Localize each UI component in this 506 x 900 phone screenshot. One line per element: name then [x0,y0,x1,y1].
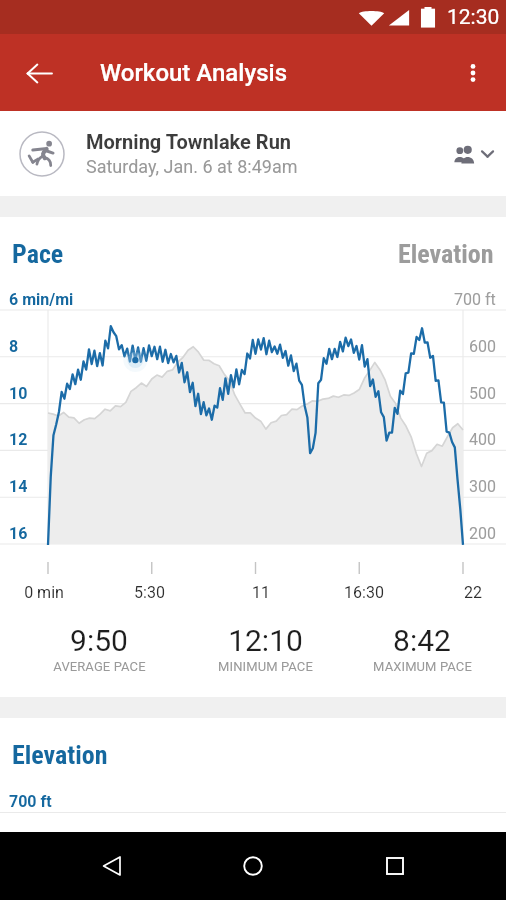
button[interactable]: 8:42 [342,623,502,674]
staticText: 11 [252,583,270,602]
staticText: 8:42 [393,623,451,658]
staticText: 12 [9,430,28,449]
button[interactable]: Home [223,836,283,896]
button[interactable]: Back [82,836,142,896]
staticText: MAXIMUM PACE [373,659,472,674]
staticText: 0 min [24,583,64,602]
staticText: 12:10 [228,623,303,658]
staticText: AVERAGE PACE [53,659,146,674]
staticText: 10 [9,384,28,403]
staticText: 12:30 [447,5,500,30]
staticText: 22 [464,583,482,602]
staticText: 700 ft [9,792,52,811]
staticText: 9:50 [70,623,128,658]
staticText: 200 [469,524,496,543]
staticText: 5:30 [134,583,165,602]
staticText: 600 [469,337,496,356]
staticText: Saturday, Jan. 6 at 8:49am [86,156,298,177]
staticText: 14 [9,477,28,496]
staticText: 500 [469,384,496,403]
button[interactable]: Workout visibility [444,123,506,185]
button[interactable]: Morning Townlake Run [0,111,506,196]
button[interactable]: Navigate up [13,47,65,99]
button[interactable]: Elevation [12,740,108,770]
button[interactable]: Pace [12,239,64,269]
staticText: 8 [9,337,19,356]
staticText: MINIMUM PACE [218,659,313,674]
staticText: 6 min/mi [9,290,74,309]
staticText: Morning Townlake Run [86,130,292,153]
button[interactable]: Recent apps [365,836,425,896]
button[interactable]: More options [448,48,498,98]
button[interactable]: 12:10 [185,623,345,674]
staticText: Workout Analysis [100,59,288,87]
button[interactable]: 9:50 [19,623,179,674]
button[interactable]: Elevation [398,239,494,269]
staticText: 700 ft [454,290,496,309]
staticText: 300 [469,477,496,496]
staticText: 400 [469,430,496,449]
staticText: 16 [9,524,28,543]
staticText: 16:30 [344,583,384,602]
